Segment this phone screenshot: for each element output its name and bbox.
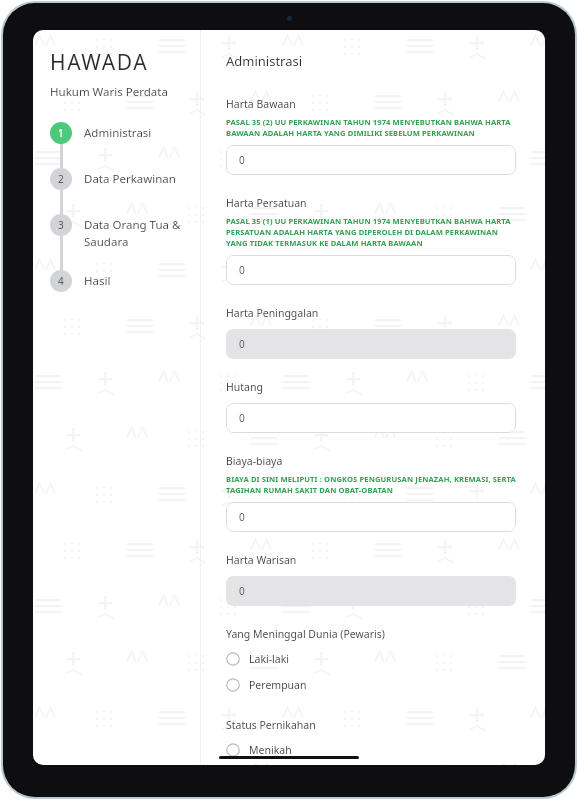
staticText: Hasil — [84, 273, 111, 289]
button[interactable]: 0 — [226, 145, 516, 175]
button[interactable]: 0 — [226, 403, 516, 433]
staticText: Harta Peninggalan — [226, 306, 319, 320]
staticText: 2 — [58, 172, 64, 186]
button[interactable]: Perempuan — [226, 676, 307, 694]
staticText: Administrasi — [84, 125, 152, 141]
staticText: 3 — [58, 218, 64, 232]
staticText: 0 — [239, 510, 245, 524]
staticText: Laki-laki — [249, 652, 290, 666]
button[interactable]: Menikah — [226, 741, 292, 759]
staticText: Harta Persatuan — [226, 196, 307, 210]
staticText: Data Orang Tua & Saudara — [84, 217, 181, 250]
staticText: Hutang — [226, 380, 263, 394]
staticText: 0 — [239, 153, 245, 167]
button[interactable]: 4 — [50, 270, 200, 292]
staticText: Biaya-biaya — [226, 454, 283, 468]
staticText: 0 — [239, 584, 245, 598]
staticText: Harta Bawaan — [226, 97, 296, 111]
staticText: 4 — [58, 274, 64, 288]
staticText: 0 — [239, 411, 245, 425]
staticText: 0 — [239, 337, 245, 351]
staticText: BIAYA DI SINI MELIPUTI : ONGKOS PENGURUS… — [226, 474, 516, 495]
staticText: Harta Warisan — [226, 553, 297, 567]
staticText: Perempuan — [249, 678, 307, 692]
staticText: PASAL 35 (1) UU PERKAWINAN TAHUN 1974 ME… — [226, 216, 516, 248]
button[interactable]: 2 — [50, 168, 200, 214]
button[interactable]: 1 — [50, 122, 200, 168]
button[interactable]: 3 — [50, 214, 200, 270]
staticText: HAWADA — [50, 48, 149, 77]
staticText: Administrasi — [226, 52, 303, 70]
button[interactable]: Laki-laki — [226, 650, 290, 668]
staticText: 0 — [239, 263, 245, 277]
button[interactable]: 0 — [226, 502, 516, 532]
staticText: Menikah — [249, 743, 292, 757]
staticText: Hukum Waris Perdata — [50, 84, 168, 100]
staticText: Yang Meninggal Dunia (Pewaris) — [226, 627, 385, 641]
staticText: Data Perkawinan — [84, 171, 176, 187]
staticText: Status Pernikahan — [226, 718, 316, 732]
staticText: 1 — [58, 126, 64, 140]
button[interactable]: 0 — [226, 255, 516, 285]
staticText: PASAL 35 (2) UU PERKAWINAN TAHUN 1974 ME… — [226, 117, 516, 138]
